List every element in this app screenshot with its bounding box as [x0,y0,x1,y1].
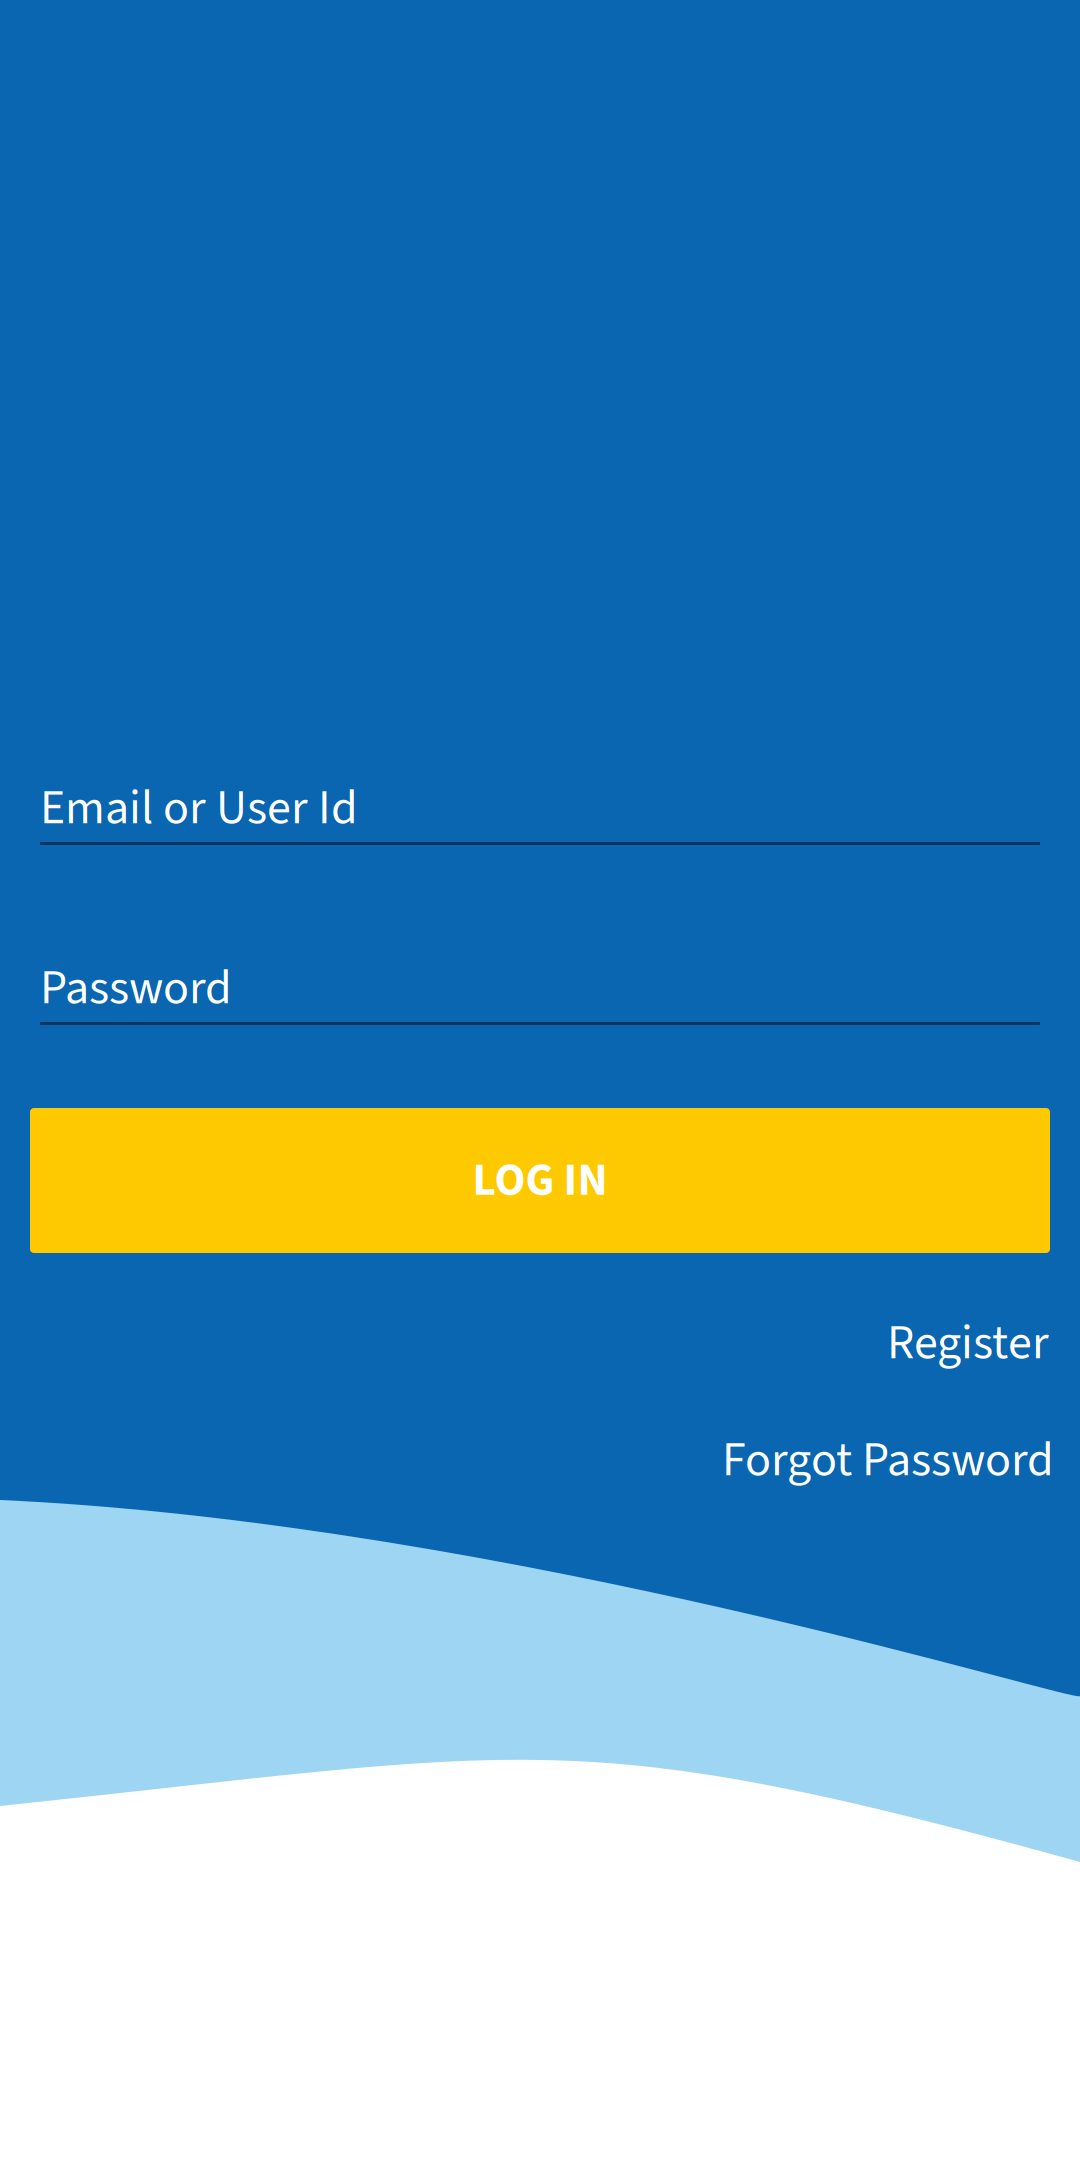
staticText: Forgot Password [722,1426,1054,1494]
staticText: Register [887,1309,1049,1377]
staticText: LOG IN [472,1148,607,1213]
button[interactable]: Register [887,1309,1055,1381]
button[interactable]: Forgot Password [722,1426,1057,1498]
button[interactable]: Password [40,954,1040,1054]
button[interactable]: LOG IN [30,1108,1050,1253]
staticText: Password [40,954,232,1022]
button[interactable]: Email or User Id [40,774,1040,874]
staticText: Email or User Id [40,774,358,842]
